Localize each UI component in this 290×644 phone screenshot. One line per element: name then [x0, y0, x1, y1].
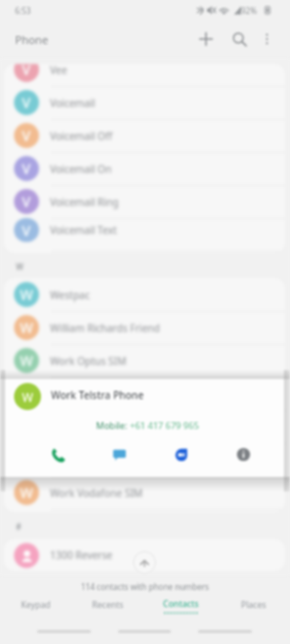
button[interactable]: 1300 Reverse — [4, 539, 285, 571]
staticText: Work Optus SIM — [50, 354, 127, 368]
staticText: W — [16, 261, 24, 272]
staticText: 6:53 — [15, 5, 31, 16]
staticText: Voicemail On — [50, 162, 112, 176]
button[interactable]: Search — [223, 22, 255, 56]
button[interactable]: V — [4, 218, 285, 242]
staticText: W — [20, 285, 34, 304]
button[interactable]: V — [4, 185, 285, 218]
staticText: Work Telstra SIM — [50, 420, 129, 434]
staticText: W — [20, 351, 34, 370]
button[interactable]: Contact info — [231, 442, 255, 466]
button[interactable]: Contacts — [144, 594, 217, 618]
button[interactable]: W — [4, 443, 285, 476]
button[interactable]: W — [4, 476, 285, 509]
staticText: Westpac — [50, 288, 90, 302]
button[interactable]: W — [4, 278, 285, 311]
button[interactable]: Video call — [169, 442, 193, 466]
staticText: V — [22, 126, 31, 145]
staticText: W — [20, 483, 34, 502]
button[interactable]: Scroll to top — [133, 551, 156, 574]
button[interactable]: W — [4, 311, 285, 344]
button[interactable]: More options — [251, 22, 283, 56]
button[interactable]: V — [4, 152, 285, 185]
staticText: W — [22, 389, 34, 405]
button[interactable]: V — [4, 86, 285, 119]
staticText: V — [22, 221, 31, 240]
staticText: Work Vodafone SIM — [50, 486, 143, 500]
staticText: Voicemail — [50, 96, 95, 110]
button[interactable]: W — [4, 410, 285, 443]
staticText: +61 417 679 965 — [130, 419, 199, 431]
button[interactable]: Call — [45, 442, 69, 466]
button[interactable]: Send message — [107, 442, 131, 466]
staticText: V — [22, 93, 31, 112]
staticText: 114 contacts with phone numbers — [81, 581, 209, 592]
staticText: 1300 Reverse — [50, 548, 113, 562]
button[interactable]: W — [4, 377, 285, 410]
button[interactable]: Recents — [72, 594, 144, 618]
staticText: Mobile: — [96, 419, 130, 431]
staticText: Phone — [15, 32, 49, 47]
staticText: W — [20, 318, 34, 337]
staticText: V — [22, 159, 31, 178]
button[interactable]: Places — [217, 594, 290, 618]
staticText: Voicemail Ring — [50, 195, 119, 209]
staticText: Work Virgin SIM — [50, 453, 126, 467]
staticText: Work Telstra Phone — [51, 388, 144, 402]
staticText: William Richards Friend — [50, 321, 160, 335]
button[interactable]: Add new contact — [190, 22, 222, 56]
button[interactable]: V — [4, 119, 285, 152]
staticText: V — [22, 64, 31, 79]
staticText: # — [16, 521, 22, 532]
staticText: Places — [241, 599, 267, 611]
staticText: Keypad — [21, 599, 51, 611]
staticText: Recents — [92, 599, 124, 611]
staticText: Contacts — [163, 598, 199, 610]
button[interactable]: V — [4, 64, 285, 86]
staticText: Work Telstra Phone — [50, 387, 141, 401]
staticText: V — [22, 192, 31, 211]
staticText: Voicemail Off — [50, 129, 113, 143]
staticText: Vee — [50, 64, 68, 77]
staticText: Voicemail Text — [50, 223, 117, 237]
button[interactable]: W — [4, 344, 285, 377]
staticText: W — [20, 384, 34, 403]
button[interactable]: Keypad — [0, 594, 72, 618]
staticText: 92% — [241, 5, 257, 16]
